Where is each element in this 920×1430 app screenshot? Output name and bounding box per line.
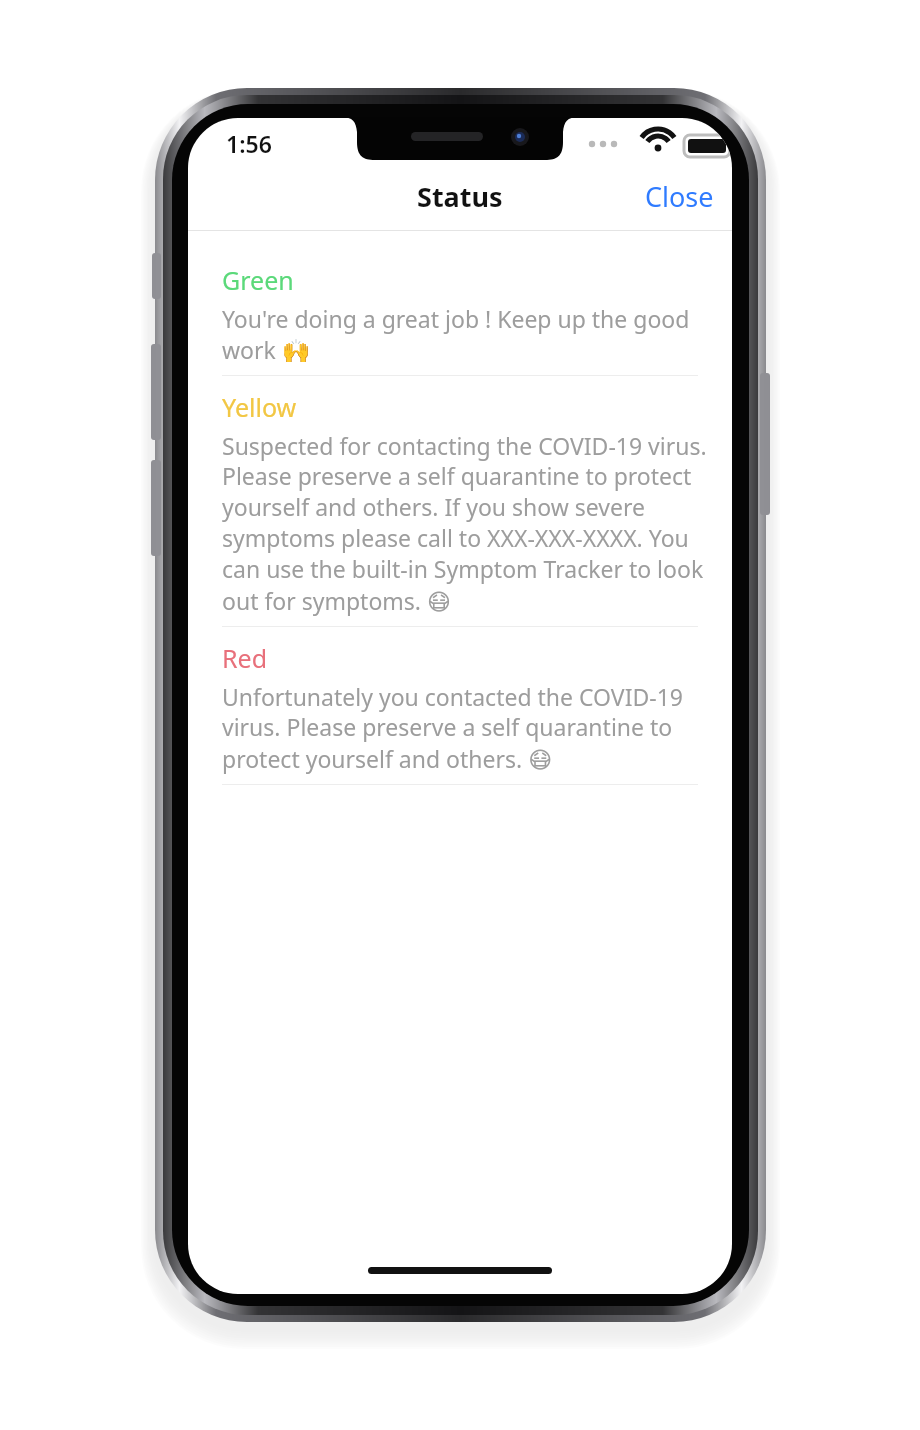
button[interactable]: Green [188,231,732,375]
button[interactable]: Yellow [188,376,732,626]
button[interactable]: Close [637,170,722,223]
staticText: Suspected for contacting the COVID-19 vi… [222,430,708,616]
staticText: Green [222,263,294,297]
staticText: Red [222,641,268,675]
staticText: You're doing a great job ! Keep up the g… [222,303,708,365]
staticText: Close [645,178,714,215]
staticText: Status [417,178,503,215]
other: Signal, Wi-Fi and battery status [588,130,718,152]
staticText: Unfortunately you contacted the COVID-19… [222,681,708,774]
button[interactable]: Red [188,627,732,784]
staticText: Yellow [222,390,297,424]
staticText: 1:56 [226,128,272,159]
